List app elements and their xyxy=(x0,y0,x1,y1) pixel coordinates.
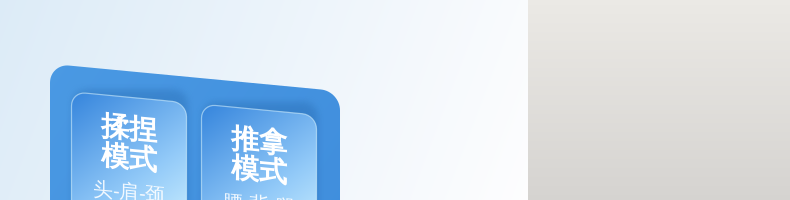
staticText: 模式 xyxy=(101,128,157,163)
staticText: 头-肩-颈 xyxy=(93,166,165,192)
button[interactable]: 揉捏 xyxy=(71,85,186,200)
staticText: 揉捏 xyxy=(101,99,157,133)
staticText: 推拿 xyxy=(231,99,287,133)
staticText: 模式 xyxy=(231,128,287,163)
button[interactable]: 推拿 xyxy=(201,85,316,200)
staticText: 腰-背-腿 xyxy=(223,166,295,192)
